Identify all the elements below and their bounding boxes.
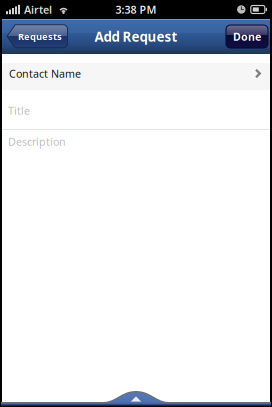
staticText: Description	[8, 135, 66, 149]
staticText: Airtel	[24, 2, 52, 17]
staticText: Requests	[18, 30, 62, 43]
button[interactable]: Done	[226, 25, 268, 48]
staticText: Title	[8, 103, 30, 118]
staticText: Add Request	[94, 28, 177, 45]
staticText: 3:38 PM	[115, 2, 156, 17]
staticText: Contact Name	[9, 66, 81, 81]
staticText: Done	[233, 29, 261, 44]
button[interactable]: Requests	[6, 24, 68, 49]
button[interactable]: Contact Name	[2, 63, 270, 90]
